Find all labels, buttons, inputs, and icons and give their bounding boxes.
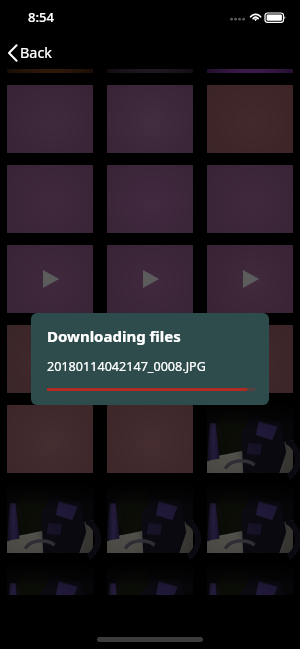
button[interactable]: Downloading files [31,313,269,405]
button[interactable] [7,565,93,595]
button[interactable] [107,69,193,73]
button[interactable] [207,245,293,313]
button[interactable] [7,485,93,553]
button[interactable] [207,485,293,553]
staticText: 8:54 [28,8,54,26]
button[interactable] [107,325,193,393]
button[interactable] [7,245,93,313]
staticText: 20180114042147_0008.JPG [47,358,206,375]
button[interactable] [207,69,293,73]
staticText: Downloading files [47,326,181,346]
button[interactable] [107,485,193,553]
button[interactable] [107,245,193,313]
button[interactable]: Back [1,38,65,68]
button[interactable] [107,565,193,595]
button[interactable] [207,565,293,595]
button[interactable] [7,325,93,393]
button[interactable] [7,69,93,73]
staticText: Back [20,43,53,63]
button[interactable] [207,325,293,393]
button[interactable] [207,405,293,473]
